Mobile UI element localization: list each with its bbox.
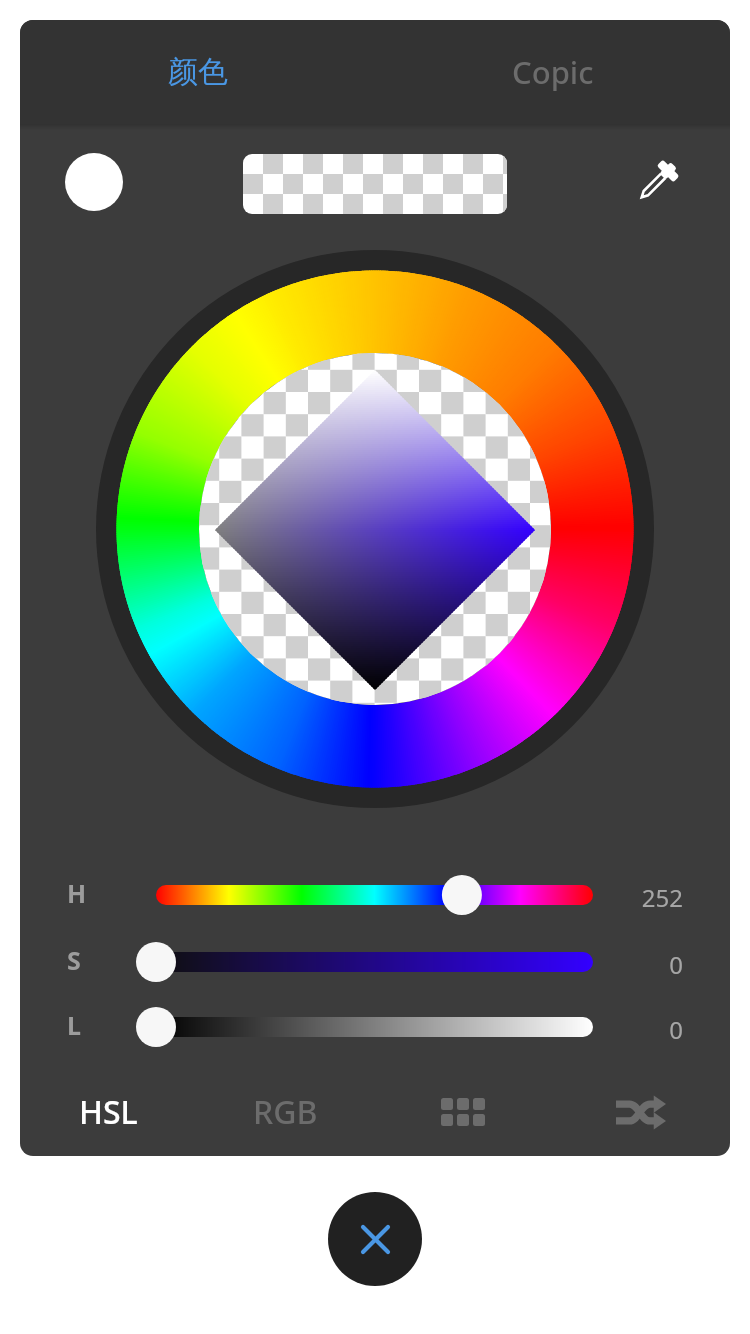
button[interactable]: Palette — [374, 1077, 552, 1147]
staticText: 252 — [613, 881, 683, 914]
staticText: L — [67, 1008, 81, 1042]
button[interactable]: RGB — [197, 1077, 374, 1147]
button[interactable]: Eyedropper — [617, 141, 697, 221]
button[interactable]: Copic — [375, 20, 730, 124]
button[interactable]: L value — [136, 994, 613, 1060]
button[interactable]: Alpha swatch — [243, 154, 507, 214]
button[interactable]: Current colour — [65, 153, 123, 211]
button[interactable]: H value — [136, 862, 613, 928]
staticText: 0 — [613, 948, 683, 981]
staticText: S — [67, 943, 81, 977]
staticText: RGB — [253, 1090, 318, 1134]
button[interactable]: Shuffle — [552, 1077, 730, 1147]
staticText: H — [67, 876, 87, 910]
button[interactable]: S value — [136, 929, 613, 995]
button[interactable]: Close — [328, 1192, 422, 1286]
button[interactable]: 颜色 — [20, 20, 375, 124]
staticText: Copic — [512, 51, 594, 93]
staticText: 颜色 — [168, 53, 228, 91]
button[interactable]: HSL — [20, 1077, 197, 1147]
staticText: HSL — [79, 1090, 138, 1134]
staticText: 0 — [613, 1013, 683, 1046]
